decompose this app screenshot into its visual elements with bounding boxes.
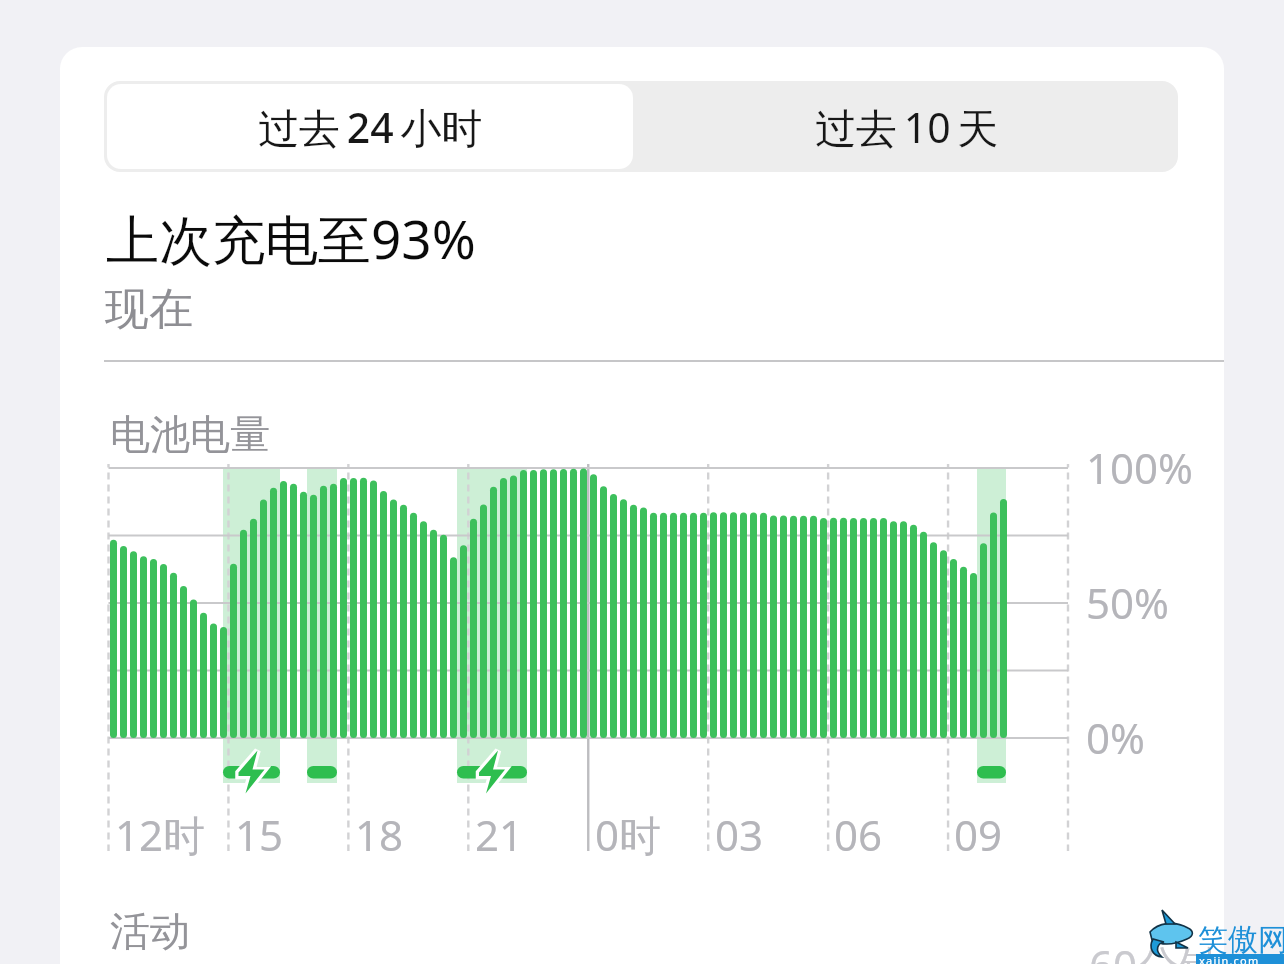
staticText: 03 — [715, 806, 764, 863]
staticText: 活动 — [110, 906, 190, 956]
staticText: xajin.com — [1199, 953, 1260, 964]
staticText: 0时 — [595, 806, 662, 863]
staticText: 电池电量 — [110, 409, 270, 459]
staticText: 21 — [475, 806, 524, 863]
button[interactable]: 过去 10 天 — [636, 81, 1178, 172]
staticText: 18 — [355, 806, 404, 863]
staticText: 0% — [1086, 709, 1145, 766]
staticText: 12时 — [115, 806, 206, 863]
staticText: 15 — [235, 806, 284, 863]
staticText: 过去 24 小时 — [258, 99, 483, 155]
staticText: 现在 — [105, 282, 193, 337]
staticText: 50% — [1086, 574, 1169, 631]
staticText: 上次充电至93% — [106, 202, 476, 274]
staticText: 60分钟 — [1089, 936, 1222, 964]
staticText: 06 — [834, 806, 883, 863]
button[interactable]: 过去 24 小时 — [107, 84, 633, 169]
staticText: 笑傲网 — [1198, 921, 1284, 959]
staticText: 过去 10 天 — [815, 99, 999, 155]
staticText: 09 — [954, 806, 1003, 863]
staticText: 100% — [1086, 439, 1193, 496]
